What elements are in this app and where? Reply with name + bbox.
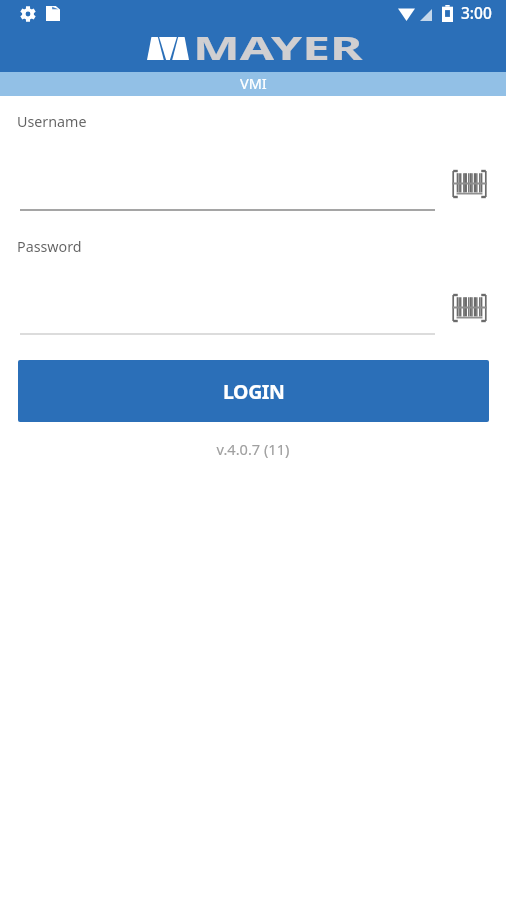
staticText: VMI: [240, 73, 267, 93]
staticText: Password: [17, 237, 82, 256]
button[interactable]: Scan password barcode: [446, 287, 492, 329]
staticText: v.4.0.7 (11): [0, 439, 506, 459]
staticText: MAYER: [193, 26, 363, 70]
button[interactable]: Username input field: [20, 160, 435, 211]
button[interactable]: LOGIN: [18, 360, 489, 422]
staticText: LOGIN: [223, 378, 285, 405]
staticText: 3:00: [461, 2, 492, 23]
button[interactable]: Scan username barcode: [446, 163, 492, 205]
staticText: Username: [17, 112, 87, 131]
